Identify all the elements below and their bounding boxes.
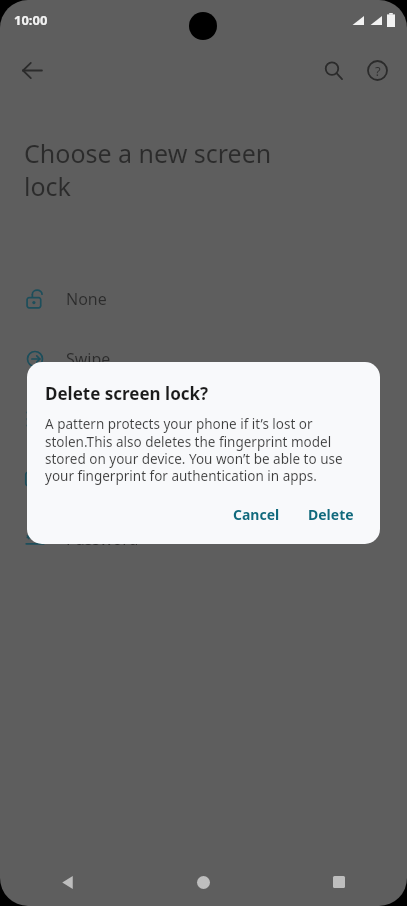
button[interactable]: Recent apps xyxy=(271,858,407,906)
staticText: Password xyxy=(66,528,139,550)
button[interactable]: Password xyxy=(0,509,407,569)
button[interactable]: None xyxy=(0,269,407,329)
button[interactable]: Search xyxy=(311,48,355,92)
staticText: ? xyxy=(375,62,381,80)
button[interactable]: Pattern xyxy=(0,389,407,449)
staticText: Choose a new screen lock xyxy=(24,136,272,203)
button[interactable]: Delete xyxy=(296,497,366,532)
staticText: Pattern xyxy=(66,408,122,430)
button[interactable]: Back xyxy=(0,858,135,906)
button[interactable]: Back xyxy=(10,48,54,92)
staticText: None xyxy=(66,288,107,310)
staticText: Delete xyxy=(308,505,354,524)
staticText: 10:00 xyxy=(14,11,48,29)
button[interactable]: Help xyxy=(355,48,399,92)
button[interactable]: Swipe xyxy=(0,329,407,389)
staticText: Swipe xyxy=(66,348,111,370)
staticText: PIN xyxy=(66,468,94,490)
button[interactable]: Home xyxy=(135,858,271,906)
staticText: Delete screen lock? xyxy=(45,382,209,405)
staticText: Cancel xyxy=(233,505,280,524)
button[interactable]: PIN xyxy=(0,449,407,509)
staticText: A pattern protects your phone if it’s lo… xyxy=(45,415,366,485)
button[interactable]: Cancel xyxy=(221,497,292,532)
